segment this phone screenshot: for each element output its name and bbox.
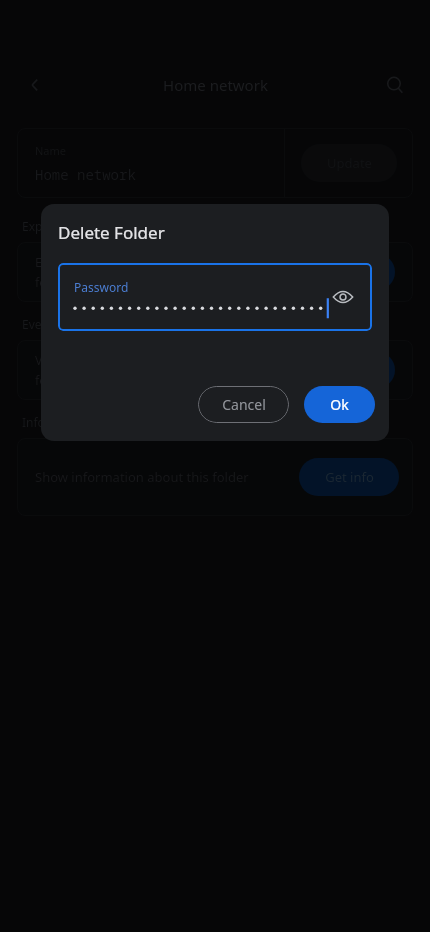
button[interactable]: Open	[323, 352, 395, 388]
staticText: folder	[35, 274, 70, 291]
staticText: Ok	[330, 395, 349, 414]
button[interactable]: Expiration date for this	[17, 242, 413, 302]
staticText: Home network	[35, 165, 136, 184]
staticText: Cancel	[222, 395, 266, 414]
staticText: Info	[22, 414, 45, 430]
staticText: Set	[350, 264, 369, 281]
staticText: Name	[35, 143, 67, 158]
staticText: Get info	[325, 468, 374, 486]
staticText: Expiration date for this	[35, 254, 169, 271]
button[interactable]: Show information about this folder	[17, 438, 413, 516]
button[interactable]: Show password	[324, 278, 362, 316]
button[interactable]: View event log for this	[17, 340, 413, 400]
staticText: Home network	[163, 75, 268, 95]
staticText: Show information about this folder	[35, 468, 249, 486]
button[interactable]: Password	[58, 263, 372, 331]
staticText: folder	[35, 372, 70, 389]
button[interactable]: Set	[323, 254, 395, 290]
button[interactable]: Get info	[299, 458, 399, 496]
staticText: View event log for this	[35, 352, 165, 369]
button[interactable]: Search	[378, 68, 412, 102]
staticText: Expiration	[22, 218, 80, 234]
staticText: Event log	[22, 316, 75, 332]
button[interactable]: Cancel	[198, 386, 289, 423]
button[interactable]: Ok	[304, 386, 375, 423]
staticText: Password	[74, 279, 129, 295]
staticText: Delete Folder	[58, 221, 165, 244]
